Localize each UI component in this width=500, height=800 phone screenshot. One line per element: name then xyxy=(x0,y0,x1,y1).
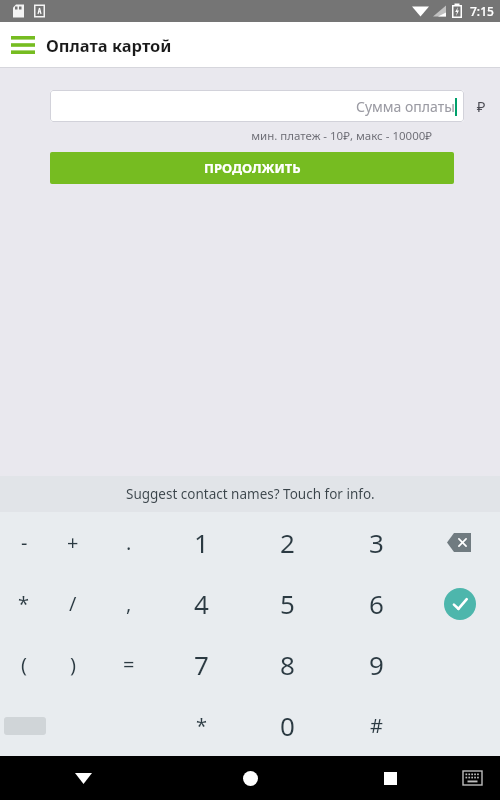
staticText: 1 xyxy=(194,525,209,560)
staticText: - xyxy=(21,529,28,556)
button[interactable]: ПРОДОЛЖИТЬ xyxy=(50,152,454,184)
staticText: ( xyxy=(21,651,27,678)
button[interactable]: Home xyxy=(200,756,300,800)
button[interactable]: * xyxy=(160,695,243,756)
button[interactable]: 0 xyxy=(243,695,332,756)
button[interactable]: 4 xyxy=(160,573,243,634)
staticText: 4 xyxy=(194,586,209,621)
staticText: Suggest contact names? Touch for info. xyxy=(126,485,375,503)
staticText: , xyxy=(126,590,132,617)
button[interactable]: = xyxy=(98,634,160,695)
button[interactable]: . xyxy=(98,512,160,573)
staticText: 0 xyxy=(280,708,295,743)
button[interactable]: 6 xyxy=(332,573,420,634)
staticText: / xyxy=(69,590,77,617)
staticText: 9 xyxy=(369,647,384,682)
button[interactable]: - xyxy=(0,512,48,573)
staticText: мин. платеж - 10₽, макс - 10000₽ xyxy=(0,128,432,144)
staticText: 3 xyxy=(369,525,384,560)
staticText: = xyxy=(123,651,135,678)
staticText: ) xyxy=(70,651,76,678)
staticText: * xyxy=(196,712,208,739)
staticText: 7 xyxy=(194,647,209,682)
staticText: Оплата картой xyxy=(46,34,172,56)
button[interactable]: ( xyxy=(0,634,48,695)
staticText: ПРОДОЛЖИТЬ xyxy=(204,159,301,177)
staticText: Сумма оплаты xyxy=(356,97,455,116)
staticText: 2 xyxy=(280,525,295,560)
staticText: 7:15 xyxy=(470,3,494,19)
button[interactable]: 7 xyxy=(160,634,243,695)
staticText: # xyxy=(370,712,383,739)
button[interactable]: Back xyxy=(0,756,167,800)
button[interactable]: , xyxy=(98,573,160,634)
button[interactable]: 1 xyxy=(160,512,243,573)
staticText: 5 xyxy=(280,586,295,621)
button[interactable]: Сумма оплаты xyxy=(50,90,464,122)
button[interactable]: / xyxy=(48,573,98,634)
staticText: 8 xyxy=(280,647,295,682)
button[interactable]: 3 xyxy=(332,512,420,573)
button[interactable]: Enter xyxy=(420,573,500,634)
button[interactable]: Suggest contact names? Touch for info. xyxy=(0,476,500,512)
staticText: 6 xyxy=(369,586,384,621)
button[interactable]: # xyxy=(332,695,420,756)
staticText: + xyxy=(67,529,79,556)
button[interactable]: Switch keyboard xyxy=(444,756,500,800)
button[interactable]: + xyxy=(48,512,98,573)
button[interactable]: Open navigation menu xyxy=(0,22,46,68)
staticText: ₽ xyxy=(472,96,490,116)
button[interactable]: 5 xyxy=(243,573,332,634)
staticText: . xyxy=(126,529,132,556)
staticText: * xyxy=(18,590,30,617)
button[interactable]: Backspace xyxy=(420,512,500,573)
button[interactable]: 9 xyxy=(332,634,420,695)
button[interactable]: * xyxy=(0,573,48,634)
button[interactable]: 8 xyxy=(243,634,332,695)
button[interactable]: ) xyxy=(48,634,98,695)
button[interactable]: 2 xyxy=(243,512,332,573)
button[interactable]: Recent apps xyxy=(350,756,430,800)
